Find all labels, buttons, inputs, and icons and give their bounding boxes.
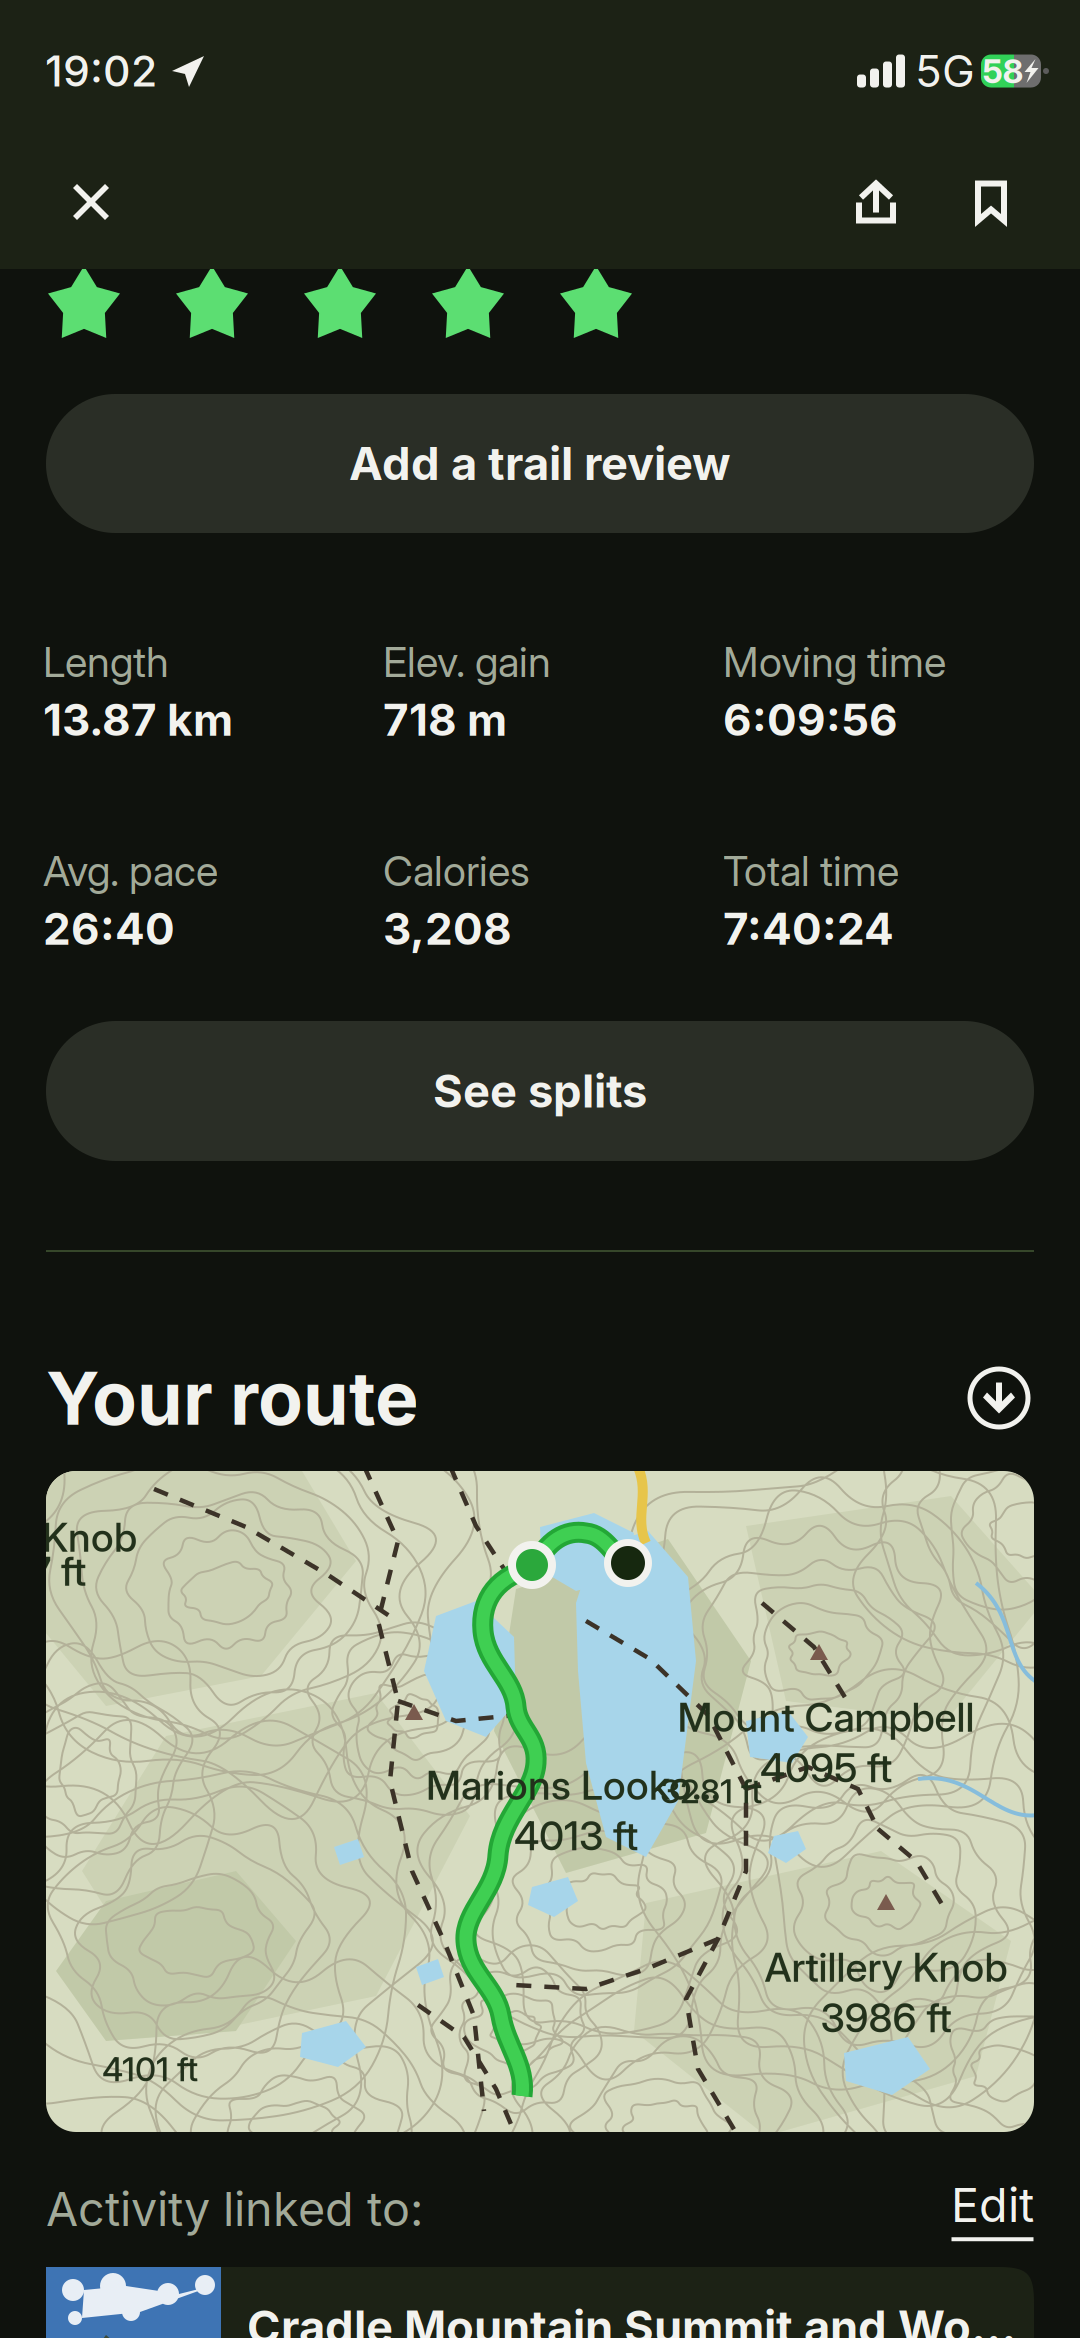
staticText: 5G bbox=[915, 44, 975, 98]
staticText: Edit bbox=[951, 2177, 1034, 2233]
button[interactable]: Edit bbox=[951, 2177, 1034, 2241]
button[interactable]: Cradle Mountain Summit and Wo… bbox=[46, 2267, 1034, 2338]
staticText: Total time bbox=[723, 846, 899, 896]
button[interactable]: See splits bbox=[46, 1021, 1034, 1161]
staticText: See splits bbox=[433, 1064, 647, 1118]
staticText: Cradle Mountain Summit and Wo… bbox=[247, 2300, 1016, 2338]
staticText: 3281 ft bbox=[660, 1771, 762, 1811]
staticText: Knob bbox=[42, 1513, 137, 1561]
staticText: 7 ft bbox=[30, 1547, 86, 1595]
staticText: 7:40:24 bbox=[723, 902, 894, 955]
staticText: Add a trail review bbox=[349, 436, 731, 491]
staticText: Length bbox=[43, 637, 169, 687]
staticText: 13.87 km bbox=[43, 693, 233, 746]
staticText: 19:02 bbox=[45, 45, 157, 97]
staticText: 58 bbox=[982, 51, 1023, 91]
staticText: 718 m bbox=[383, 693, 507, 746]
button[interactable]: Add a trail review bbox=[46, 394, 1034, 533]
staticText: Calories bbox=[383, 846, 530, 896]
staticText: 6:09:56 bbox=[723, 693, 898, 746]
staticText: 3,208 bbox=[383, 902, 512, 955]
button[interactable]: Close bbox=[45, 162, 137, 242]
staticText: Moving time bbox=[723, 637, 946, 687]
staticText: Artillery Knob bbox=[764, 1943, 1007, 1991]
staticText: 4101 ft bbox=[102, 2049, 198, 2089]
staticText: Avg. pace bbox=[43, 846, 218, 896]
staticText: Your route bbox=[46, 1354, 419, 1442]
staticText: 4095 ft bbox=[760, 1743, 892, 1792]
staticText: 4013 ft bbox=[514, 1811, 638, 1860]
staticText: Mount Campbell bbox=[677, 1693, 974, 1741]
button[interactable]: Save bbox=[945, 162, 1037, 242]
button[interactable]: Share bbox=[830, 162, 922, 242]
staticText: Activity linked to: bbox=[46, 2181, 423, 2237]
button[interactable]: Download bbox=[964, 1363, 1034, 1433]
staticText: 3986 ft bbox=[820, 1993, 951, 2042]
staticText: Marions Lookout bbox=[426, 1761, 726, 1809]
staticText: 26:40 bbox=[43, 902, 175, 955]
staticText: Elev. gain bbox=[383, 637, 551, 687]
